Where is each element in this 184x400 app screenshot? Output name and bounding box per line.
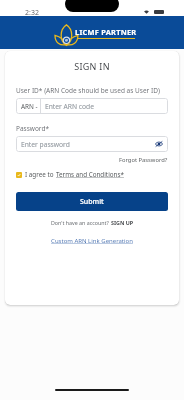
staticText: LICMF PARTNER (75, 27, 137, 37)
staticText: Enter ARN code (45, 102, 94, 111)
staticText: User ID* (ARN Code should be used as Use… (16, 86, 160, 95)
button[interactable]: Terms and Conditions* (56, 170, 124, 179)
staticText: Enter password (21, 140, 155, 149)
staticText: Password* (16, 124, 49, 133)
button[interactable]: Custom ARN Link Generation (16, 237, 168, 245)
staticText: SIGN IN (16, 60, 168, 72)
staticText: Don't have an account? (51, 219, 111, 226)
button[interactable]: SIGN UP (111, 219, 134, 226)
button[interactable]: Forgot Password? (119, 156, 168, 164)
staticText: Submit (80, 197, 104, 207)
staticText: 2:32 (25, 8, 39, 18)
staticText: ARN - (21, 102, 38, 111)
button[interactable]: ARN - (16, 98, 168, 114)
staticText: I agree to (25, 170, 56, 179)
button[interactable] (16, 172, 22, 178)
button[interactable]: Submit (16, 192, 168, 211)
button[interactable]: Enter password (16, 136, 168, 152)
button[interactable]: Toggle password visibility (155, 140, 163, 148)
